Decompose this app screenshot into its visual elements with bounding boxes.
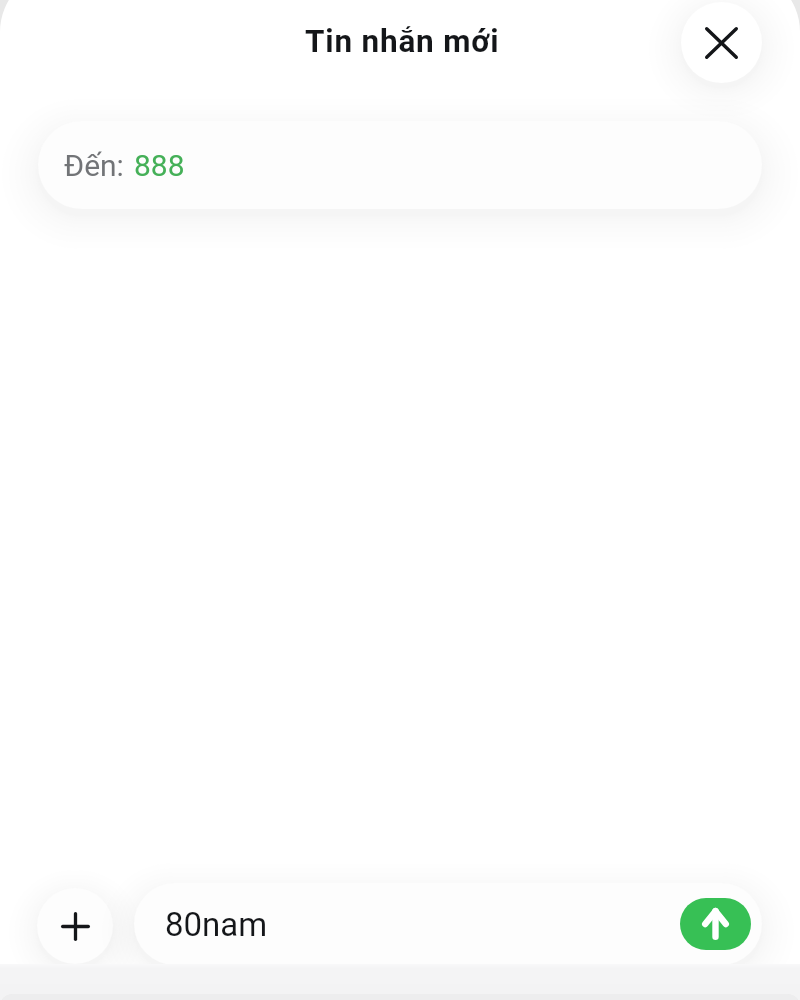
button[interactable]: 80nam [134, 883, 762, 965]
button[interactable]: Send [680, 898, 751, 950]
staticText: 80nam [165, 905, 268, 944]
staticText: 888 [134, 148, 185, 183]
staticText: Tin nhắn mới [305, 23, 500, 60]
button[interactable]: Close [681, 2, 762, 83]
button[interactable]: Add attachment [37, 888, 113, 964]
staticText: Đến: [64, 148, 124, 183]
button[interactable]: Đến: [38, 121, 762, 209]
